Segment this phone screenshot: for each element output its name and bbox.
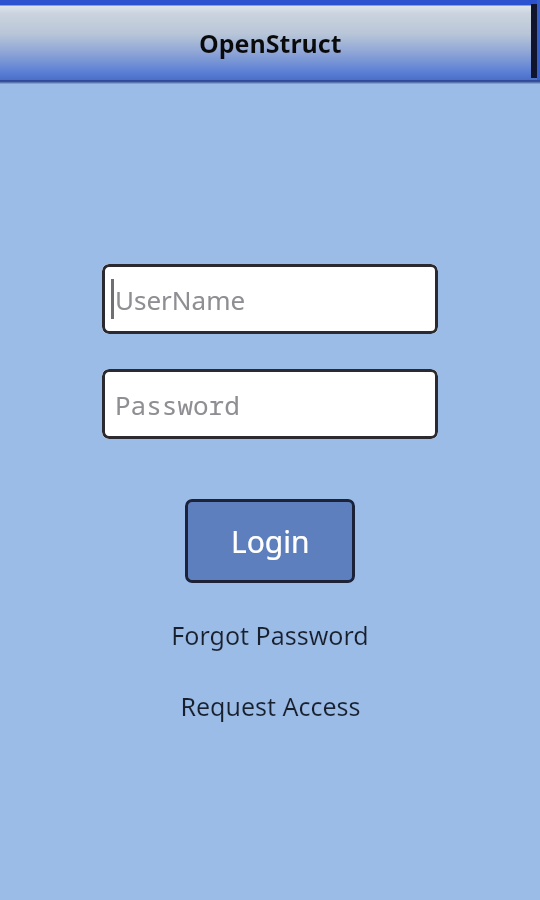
staticText: UserName (115, 282, 246, 317)
staticText: Password (115, 387, 240, 422)
staticText: Login (231, 521, 310, 562)
button[interactable]: Forgot Password (130, 614, 410, 656)
button[interactable]: Password (102, 369, 438, 439)
button[interactable]: Login (185, 499, 355, 583)
button[interactable]: Text cursor (102, 264, 438, 334)
staticText: Request Access (180, 689, 361, 723)
button[interactable]: Request Access (130, 685, 410, 727)
staticText: Forgot Password (171, 618, 369, 652)
staticText: OpenStruct (199, 26, 342, 60)
